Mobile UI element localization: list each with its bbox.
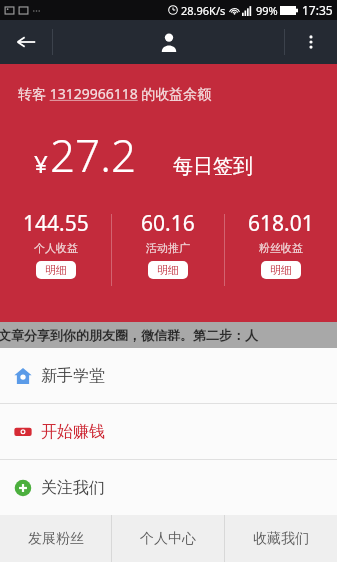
staticText: 关注我们 bbox=[41, 478, 105, 498]
staticText: 27.2 bbox=[50, 125, 137, 185]
staticText: 60.16 bbox=[141, 209, 195, 238]
staticText: 明细 bbox=[157, 263, 179, 277]
staticText: 99% bbox=[256, 3, 278, 18]
button[interactable]: 开始赚钱 bbox=[0, 404, 337, 459]
button[interactable]: 618.01 bbox=[225, 209, 337, 291]
button[interactable]: 新手学堂 bbox=[0, 348, 337, 403]
staticText: 明细 bbox=[270, 263, 292, 277]
button[interactable]: 个人中心 bbox=[112, 515, 224, 562]
staticText: 618.01 bbox=[248, 209, 314, 238]
button[interactable]: Back bbox=[0, 20, 52, 64]
staticText: 17:35 bbox=[302, 2, 333, 18]
staticText: 个人中心 bbox=[140, 530, 196, 548]
button[interactable]: 明细 bbox=[45, 263, 67, 277]
button[interactable]: 收藏我们 bbox=[225, 515, 337, 562]
staticText: 活动推广 bbox=[146, 241, 190, 255]
staticText: 144.55 bbox=[23, 209, 89, 238]
button[interactable]: 关注我们 bbox=[0, 460, 337, 515]
staticText: 收藏我们 bbox=[253, 530, 309, 548]
staticText: 开始赚钱 bbox=[41, 422, 105, 442]
staticText: 个人收益 bbox=[34, 241, 78, 255]
button[interactable]: 明细 bbox=[157, 263, 179, 277]
staticText: 28.96K/s bbox=[181, 3, 226, 18]
staticText: 新手学堂 bbox=[41, 366, 105, 386]
button[interactable]: 明细 bbox=[270, 263, 292, 277]
button[interactable]: 文章分享到你的朋友圈，微信群。第二步：人 bbox=[0, 322, 337, 348]
staticText: 转客 13129966118 的收益余额 bbox=[18, 84, 212, 103]
button[interactable]: 发展粉丝 bbox=[0, 515, 111, 562]
staticText: 粉丝收益 bbox=[259, 241, 303, 255]
button[interactable]: 每日签到 bbox=[173, 154, 253, 179]
staticText: 每日签到 bbox=[173, 154, 253, 179]
button[interactable]: 60.16 bbox=[112, 209, 224, 291]
staticText: 文章分享到你的朋友圈，微信群。第二步：人 bbox=[0, 327, 258, 343]
button[interactable]: 144.55 bbox=[0, 209, 111, 291]
staticText: 发展粉丝 bbox=[28, 530, 84, 548]
staticText: 明细 bbox=[45, 263, 67, 277]
button[interactable]: More options bbox=[285, 20, 337, 64]
button[interactable]: Profile bbox=[143, 20, 195, 64]
staticText: ¥ bbox=[34, 147, 48, 180]
